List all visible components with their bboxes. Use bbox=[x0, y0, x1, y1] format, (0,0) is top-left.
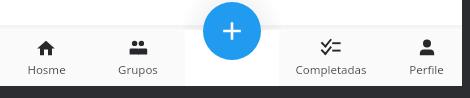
staticText: Hosme bbox=[27, 62, 66, 78]
button[interactable]: Hosme bbox=[0, 0, 92, 98]
button[interactable]: Grupos bbox=[92, 0, 184, 98]
button[interactable]: Add bbox=[203, 2, 261, 60]
staticText: Perfile bbox=[409, 62, 444, 78]
staticText: Completadas bbox=[295, 62, 367, 78]
button[interactable]: Perfile bbox=[383, 0, 470, 98]
staticText: Grupos bbox=[118, 62, 158, 78]
button[interactable]: Completadas bbox=[278, 0, 383, 98]
